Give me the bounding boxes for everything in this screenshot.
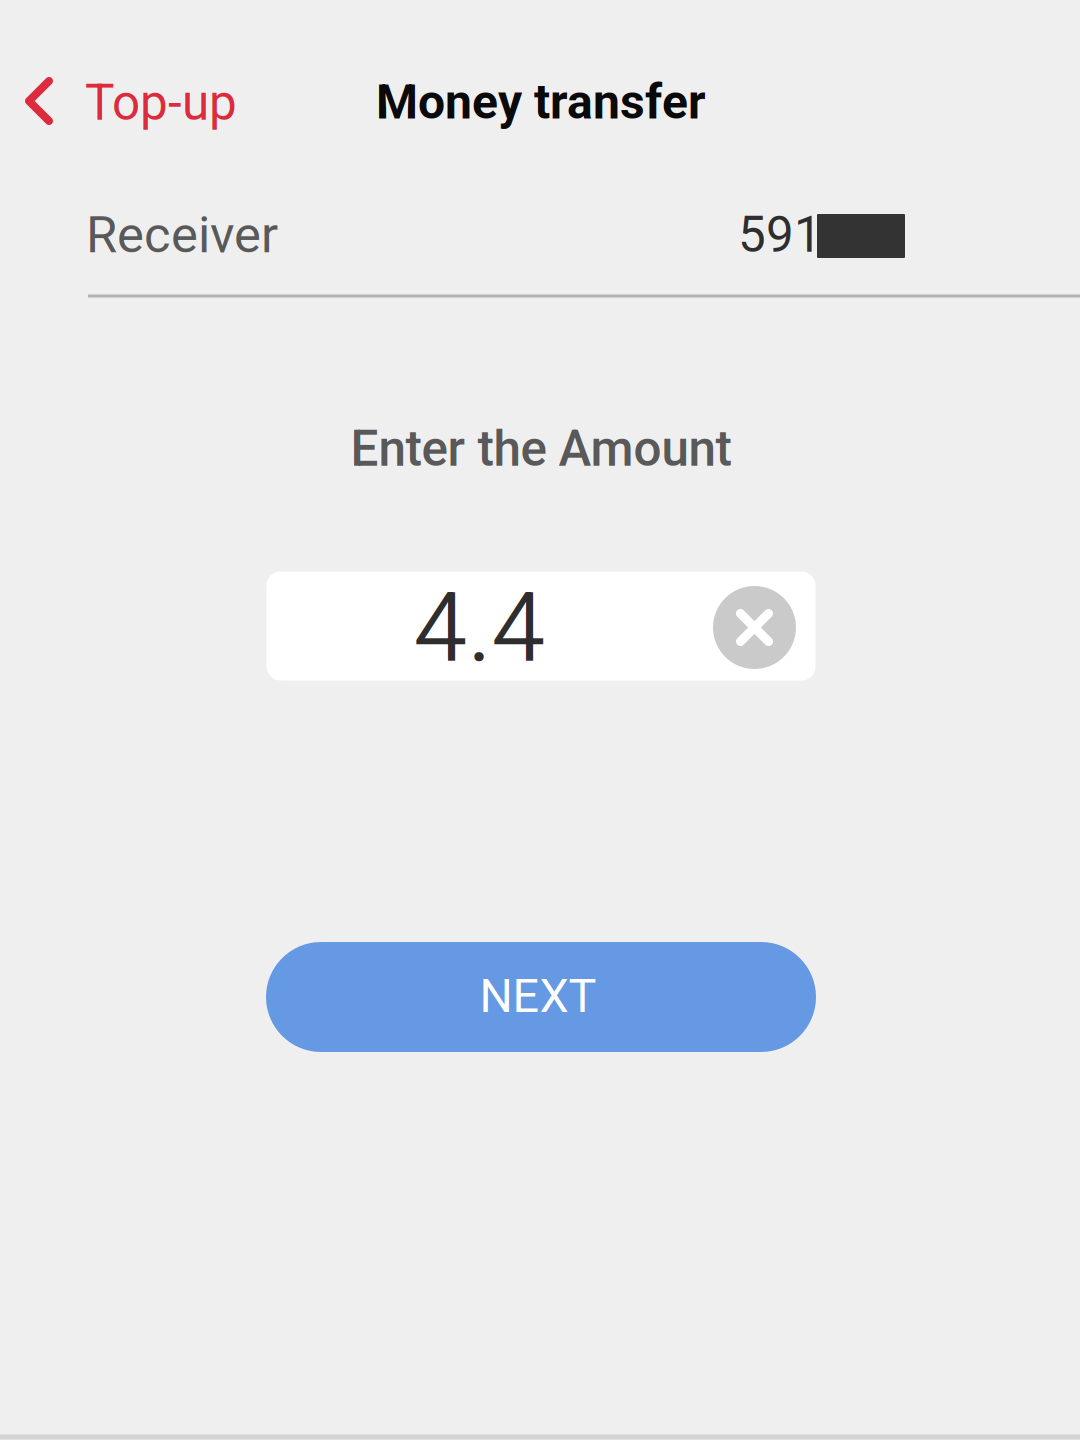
staticText: Enter the Amount xyxy=(350,420,731,478)
staticText: 591 xyxy=(738,206,822,264)
button[interactable]: Top-up xyxy=(10,50,246,152)
staticText: 4.4 xyxy=(413,572,545,685)
button[interactable]: NEXT xyxy=(266,942,816,1052)
staticText: Top-up xyxy=(85,74,237,132)
button[interactable]: Clear amount xyxy=(713,586,796,669)
staticText: Receiver xyxy=(86,205,278,265)
staticText: Money transfer xyxy=(376,74,706,130)
staticText: NEXT xyxy=(479,969,596,1023)
button[interactable]: Amount xyxy=(266,571,815,680)
